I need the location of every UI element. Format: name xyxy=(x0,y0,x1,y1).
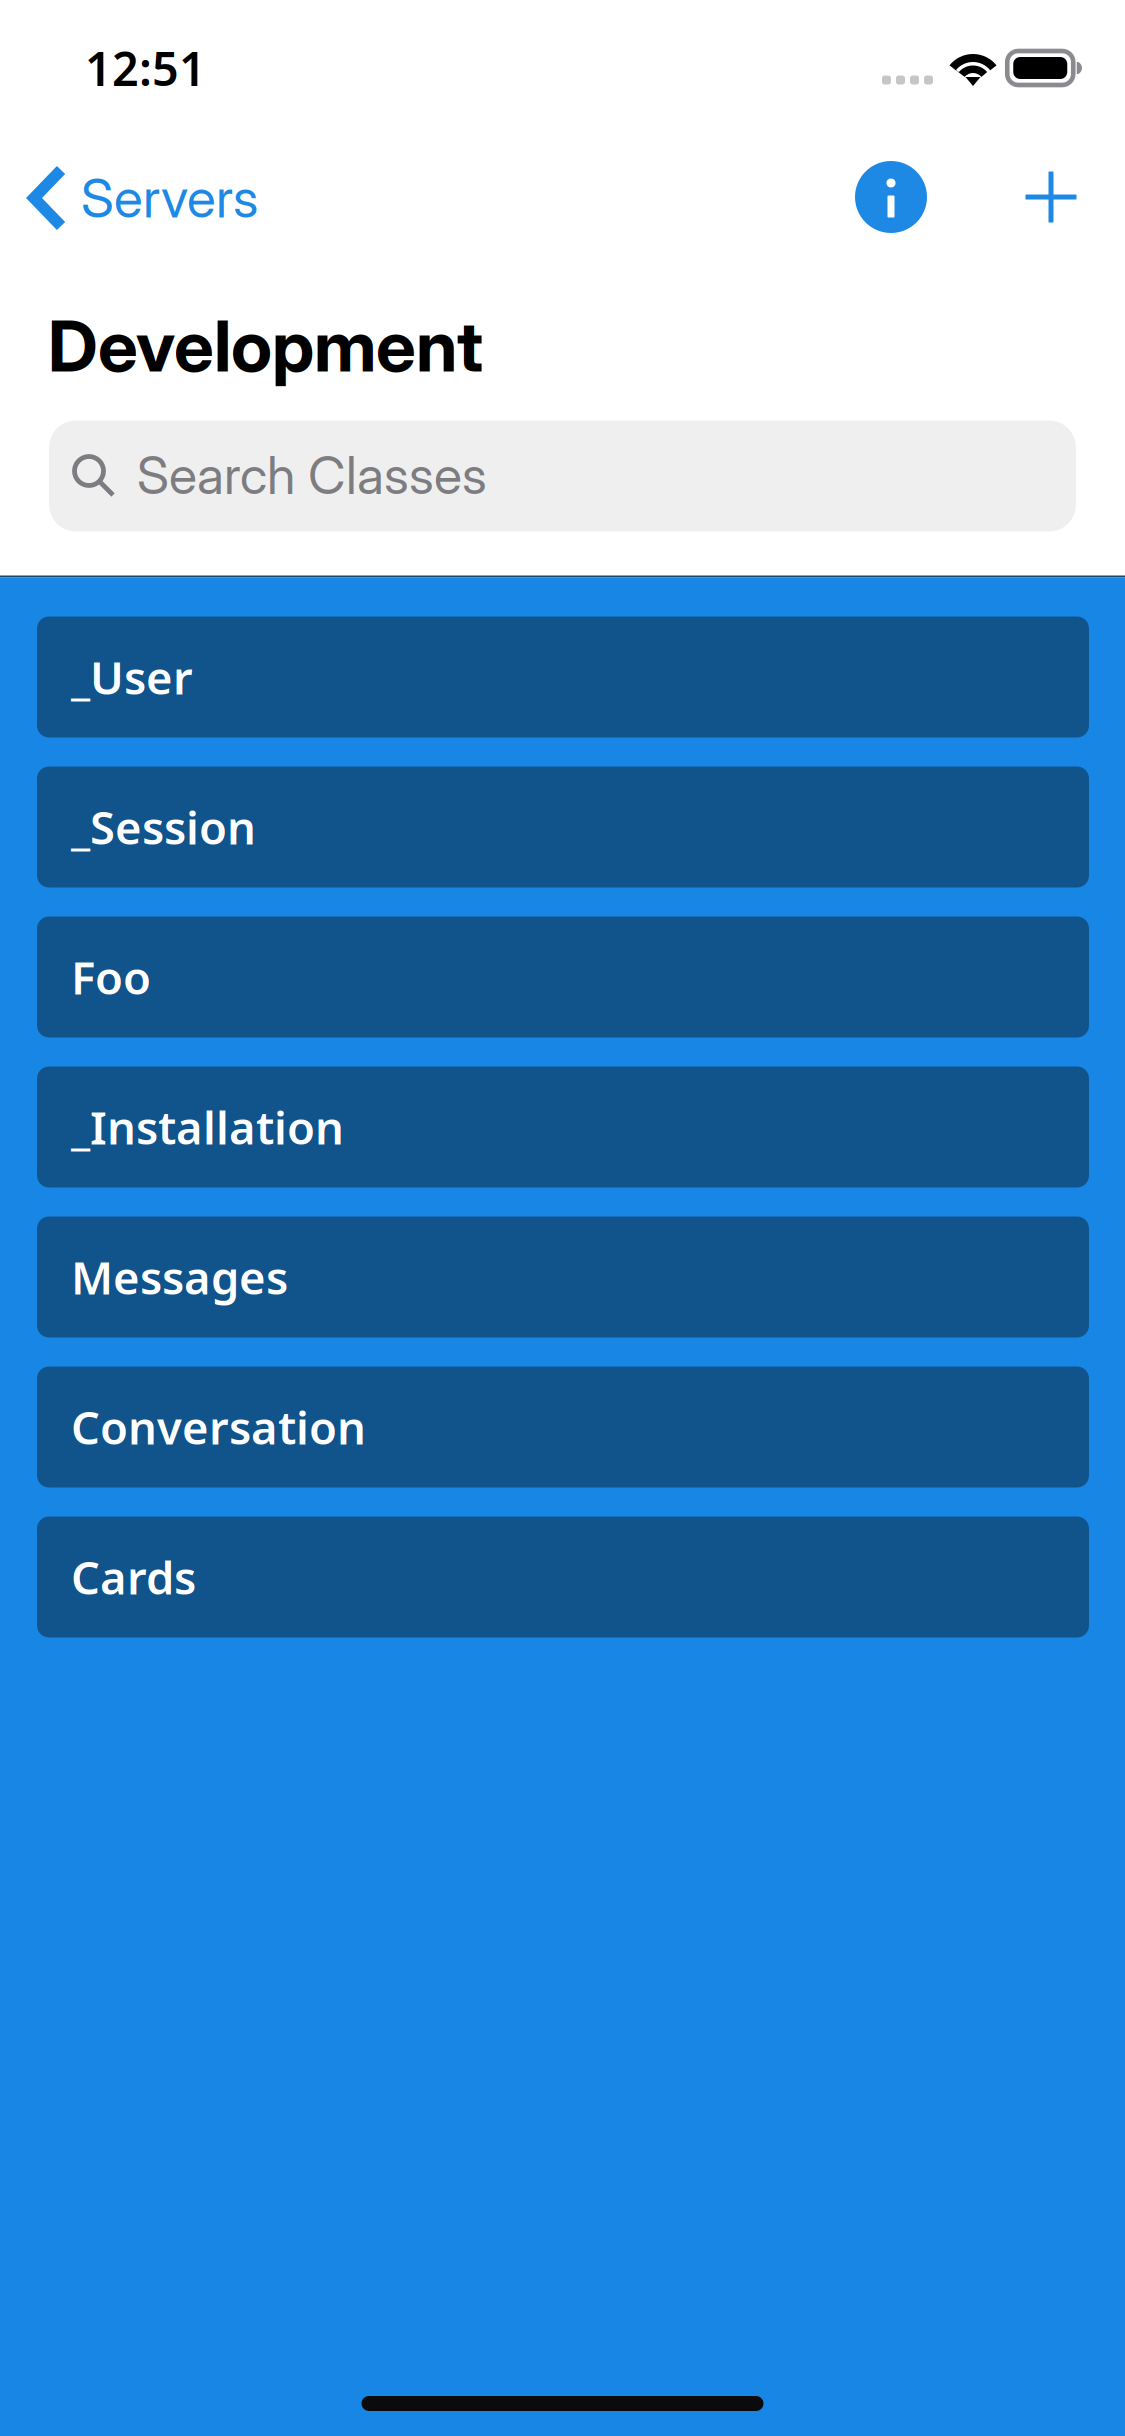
staticText: Conversation xyxy=(71,1397,366,1457)
staticText: Servers xyxy=(81,166,258,230)
button[interactable]: Add xyxy=(990,132,1112,254)
staticText: _Installation xyxy=(71,1097,344,1157)
staticText: Cards xyxy=(71,1547,196,1607)
button[interactable]: _User xyxy=(37,616,1089,737)
button[interactable]: Messages xyxy=(37,1216,1089,1337)
staticText: Foo xyxy=(71,947,151,1007)
button[interactable]: Servers xyxy=(0,132,282,254)
button[interactable]: Foo xyxy=(37,916,1089,1037)
staticText: _Session xyxy=(71,797,256,857)
staticText: Development xyxy=(48,303,483,388)
button[interactable]: _Installation xyxy=(37,1066,1089,1187)
button[interactable]: Conversation xyxy=(37,1366,1089,1487)
staticText: Search Classes xyxy=(137,443,487,506)
staticText: _User xyxy=(71,647,193,707)
staticText: Messages xyxy=(71,1247,288,1307)
button[interactable]: Search Classes xyxy=(49,420,1076,531)
staticText: 12:51 xyxy=(85,37,206,99)
button[interactable]: Info xyxy=(830,132,952,254)
button[interactable]: _Session xyxy=(37,766,1089,887)
button[interactable]: Cards xyxy=(37,1516,1089,1637)
